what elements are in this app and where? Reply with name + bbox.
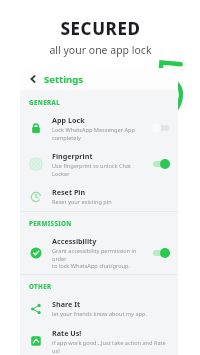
button[interactable]: Back	[26, 72, 40, 86]
button[interactable]: Reset Pin	[20, 182, 178, 211]
button[interactable]: App Lock	[20, 110, 178, 146]
button[interactable]: Toggle on	[151, 158, 171, 170]
staticText: Reset Pin	[52, 187, 86, 197]
staticText: Accessibility	[52, 236, 97, 246]
button[interactable]: Rate Us!	[20, 323, 178, 355]
button[interactable]: Toggle off	[151, 122, 171, 134]
staticText: OTHER	[29, 282, 52, 290]
button[interactable]: Share It	[20, 294, 178, 323]
staticText: Rate Us!	[52, 328, 82, 338]
staticText: Share It	[52, 299, 81, 309]
button[interactable]: Fingerprint	[20, 146, 178, 182]
staticText: Lock WhatsApp Messenger App completely	[52, 126, 135, 141]
staticText: Fingerprint	[52, 151, 93, 161]
staticText: GENERAL	[29, 98, 61, 106]
staticText: Use fingerprint to unlock Chat Locker	[52, 162, 147, 177]
button[interactable]: Toggle on	[151, 247, 171, 259]
staticText: Reset your existing pin	[52, 198, 112, 206]
staticText: App Lock	[52, 115, 85, 125]
staticText: PERMISSION	[29, 219, 72, 227]
staticText: if app work good...Just take action and …	[52, 339, 171, 354]
button[interactable]: Accessibility	[20, 231, 178, 274]
staticText: all your one app lock	[49, 43, 152, 57]
staticText: SECURED	[60, 17, 141, 40]
staticText: Settings	[44, 73, 83, 86]
staticText: let your friends know about my app.	[52, 310, 147, 318]
staticText: Grant accessibility permission in order …	[52, 247, 147, 269]
